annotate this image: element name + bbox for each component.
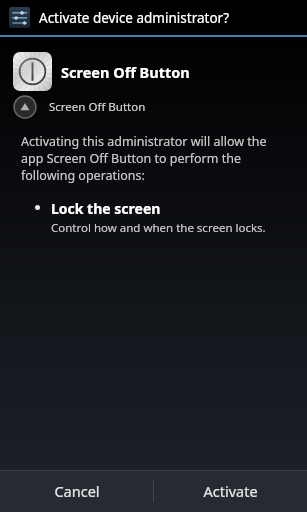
- staticText: Control how and when the screen locks.: [51, 220, 266, 236]
- button[interactable]: Collapse details: [13, 95, 307, 119]
- staticText: Activate: [203, 481, 258, 501]
- staticText: Screen Off Button: [49, 99, 146, 115]
- staticText: Lock the screen: [51, 199, 161, 218]
- staticText: Activate device administrator?: [39, 9, 229, 27]
- other: Collapse details: [13, 95, 37, 119]
- staticText: Cancel: [54, 481, 100, 501]
- staticText: Screen Off Button: [61, 62, 190, 82]
- staticText: Activating this administrator will allow…: [21, 133, 281, 184]
- button[interactable]: Activate: [154, 470, 307, 512]
- button[interactable]: Cancel: [0, 470, 153, 512]
